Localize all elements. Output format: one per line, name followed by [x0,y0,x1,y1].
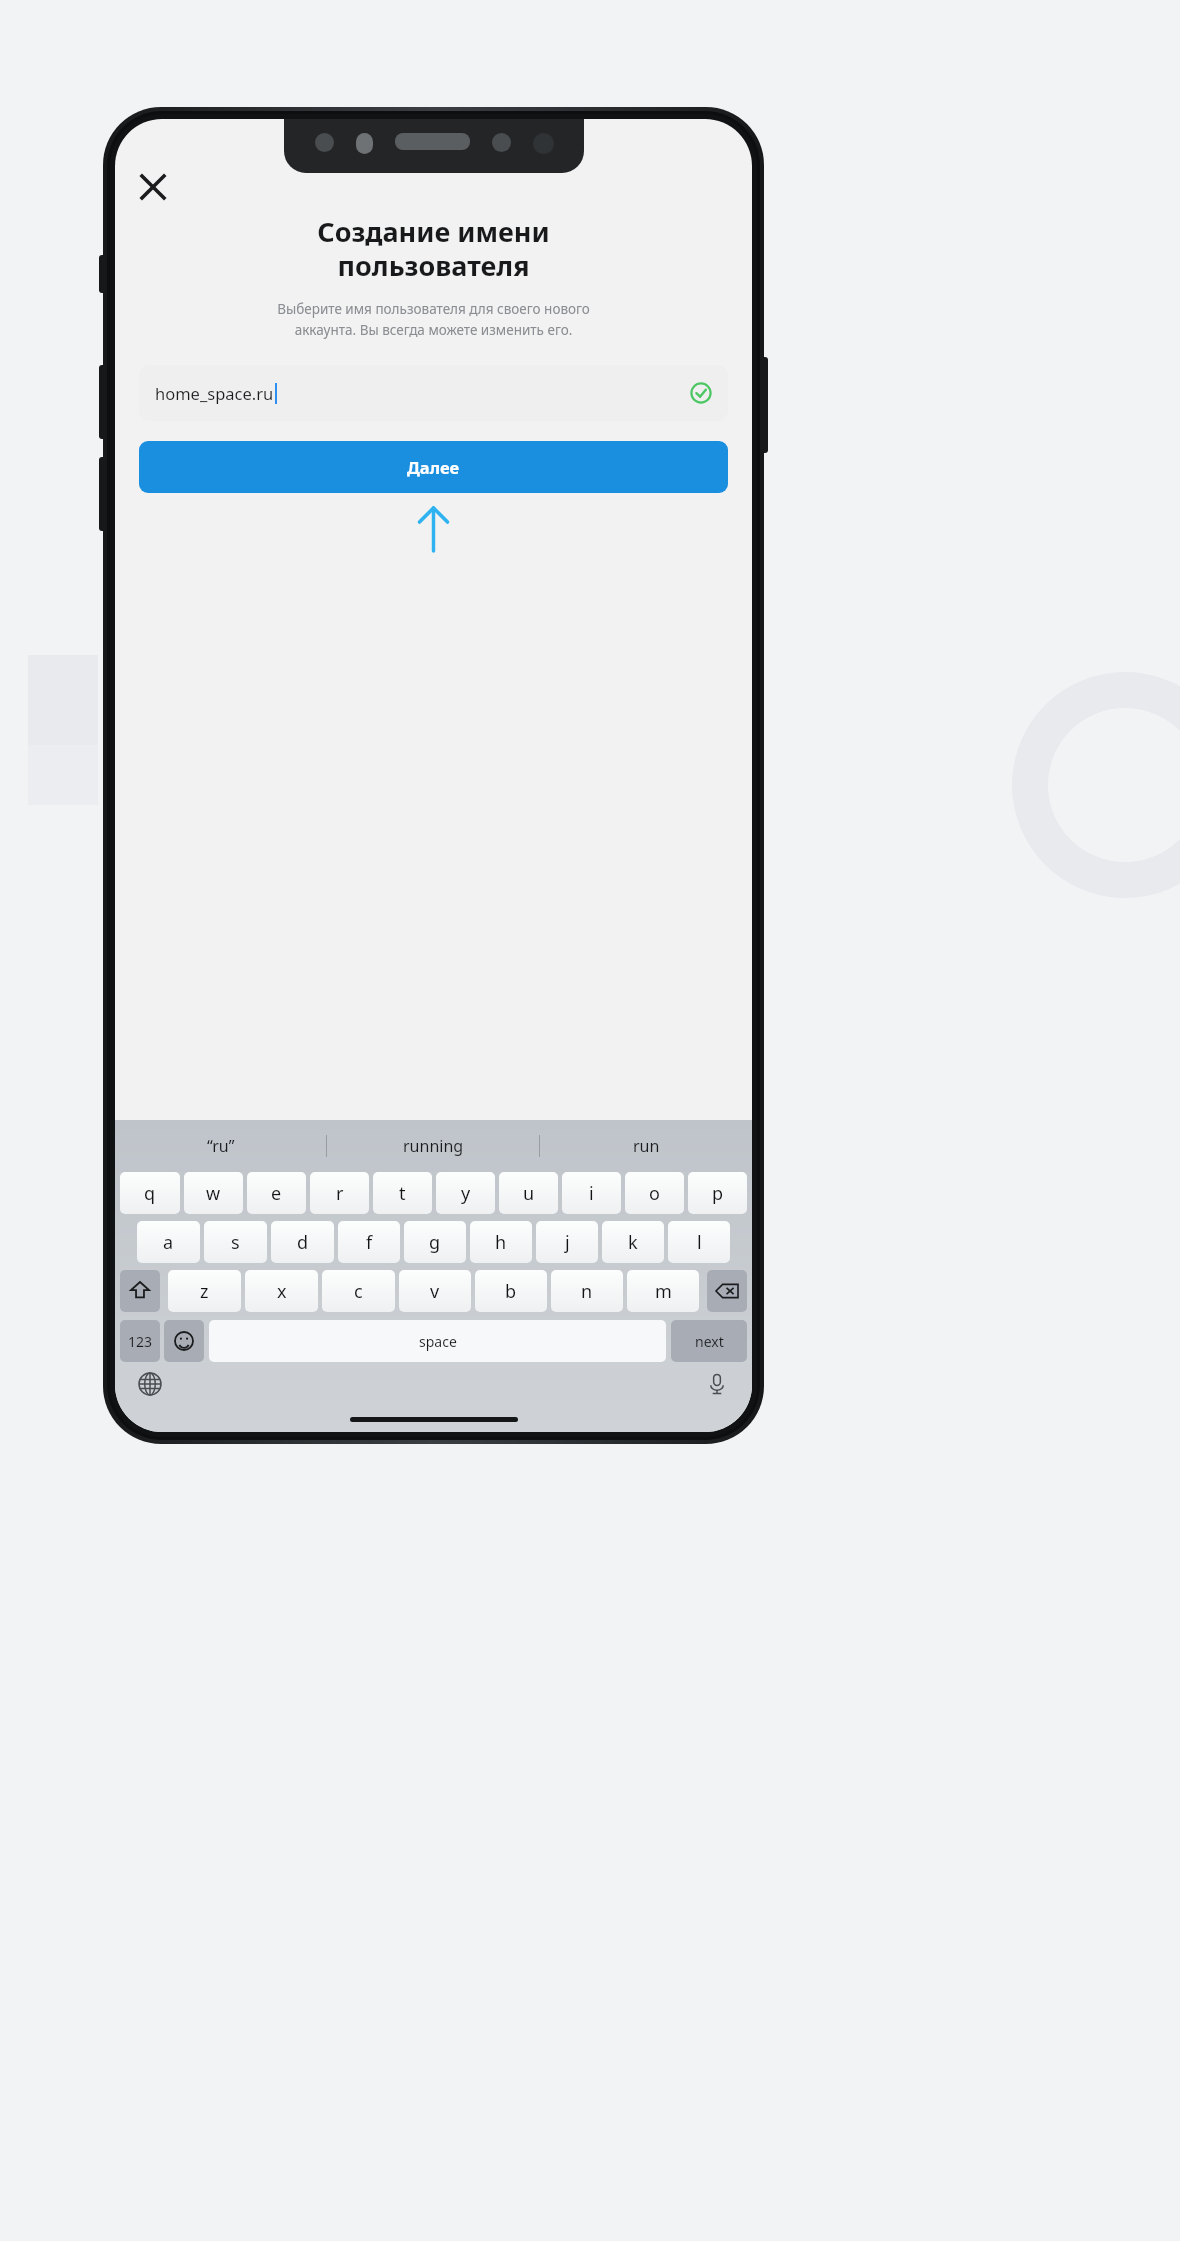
button[interactable]: Далее [139,441,728,493]
staticText: space [419,1332,457,1351]
staticText: q [144,1181,156,1206]
button[interactable]: s [204,1221,267,1263]
staticText: 123 [128,1332,153,1351]
button[interactable]: next [671,1320,747,1362]
button[interactable]: 123 [120,1320,160,1362]
button[interactable]: home_space.ru [139,365,728,421]
button[interactable]: space [209,1320,666,1362]
button[interactable]: x [245,1270,318,1312]
staticText: “ru” [207,1135,235,1157]
staticText: y [461,1181,471,1206]
button[interactable]: a [137,1221,200,1263]
button[interactable]: Close [131,165,175,209]
staticText: running [403,1135,464,1157]
staticText: f [366,1230,373,1255]
staticText: run [633,1135,660,1157]
button[interactable]: i [562,1172,621,1214]
button[interactable]: u [499,1172,558,1214]
staticText: j [565,1230,570,1255]
button[interactable]: j [536,1221,598,1263]
button[interactable]: c [322,1270,395,1312]
button[interactable]: h [470,1221,532,1263]
staticText: Выберите имя пользователя для своего нов… [135,300,732,339]
button[interactable]: l [668,1221,730,1263]
button[interactable]: e [247,1172,306,1214]
button[interactable]: q [120,1172,180,1214]
button[interactable]: Voice input [700,1367,734,1401]
button[interactable]: Emoji [164,1320,204,1362]
button[interactable]: r [310,1172,369,1214]
button[interactable]: t [373,1172,432,1214]
staticText: z [200,1279,209,1304]
staticText: g [429,1230,441,1255]
button[interactable]: p [688,1172,747,1214]
button[interactable]: run [540,1120,752,1172]
button[interactable]: Shift [120,1270,160,1312]
button[interactable]: w [184,1172,243,1214]
staticText: n [581,1279,593,1304]
button[interactable]: d [271,1221,334,1263]
staticText: a [163,1230,174,1255]
staticText: v [430,1279,440,1304]
button[interactable]: running [327,1120,539,1172]
button[interactable]: Backspace [707,1270,747,1312]
staticText: c [354,1279,363,1304]
staticText: p [712,1181,724,1206]
button[interactable]: Change language [133,1367,167,1401]
staticText: u [523,1181,535,1206]
button[interactable]: o [625,1172,684,1214]
staticText: Далее [407,456,460,478]
staticText: i [589,1181,594,1206]
staticText: o [649,1181,660,1206]
staticText: next [695,1332,724,1351]
staticText: b [505,1279,517,1304]
button[interactable]: v [399,1270,471,1312]
button[interactable]: b [475,1270,547,1312]
staticText: x [277,1279,287,1304]
button[interactable]: g [404,1221,466,1263]
button[interactable]: k [602,1221,664,1263]
staticText: l [697,1230,702,1255]
staticText: h [495,1230,507,1255]
staticText: m [655,1279,672,1304]
staticText: e [271,1181,282,1206]
staticText: d [297,1230,309,1255]
button[interactable]: “ru” [115,1120,326,1172]
staticText: s [231,1230,240,1255]
staticText: t [399,1181,406,1206]
button[interactable]: y [436,1172,495,1214]
button[interactable]: f [338,1221,400,1263]
button[interactable]: n [551,1270,623,1312]
staticText: r [336,1181,344,1206]
button[interactable]: z [168,1270,241,1312]
staticText: Создание имени пользователя [139,213,728,284]
staticText: w [206,1181,221,1206]
staticText: home_space.ru [155,382,274,404]
button[interactable]: m [627,1270,699,1312]
staticText: k [628,1230,638,1255]
